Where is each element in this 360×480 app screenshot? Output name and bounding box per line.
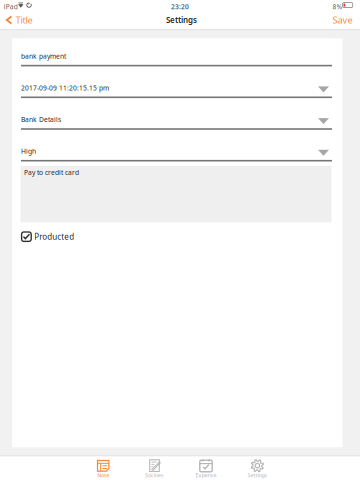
staticText: Title bbox=[15, 14, 32, 26]
staticText: Producted bbox=[34, 231, 74, 242]
staticText: Expense bbox=[195, 472, 216, 479]
button[interactable]: Expense bbox=[180, 457, 232, 480]
staticText: Settings bbox=[247, 472, 267, 479]
staticText: Note bbox=[97, 472, 109, 479]
staticText: iPad bbox=[4, 2, 18, 11]
button[interactable]: High bbox=[21, 134, 332, 165]
staticText: bank payment bbox=[21, 52, 66, 61]
staticText: Settings bbox=[166, 15, 197, 25]
button[interactable]: Stickies bbox=[129, 457, 181, 480]
staticText: 2017-09-09 11:20:15.15 pm bbox=[21, 83, 109, 92]
button[interactable]: Note bbox=[77, 457, 129, 480]
button[interactable]: Bank Details bbox=[21, 102, 332, 134]
button[interactable]: Settings bbox=[231, 457, 283, 480]
staticText: Pay to credit card bbox=[24, 168, 79, 177]
button[interactable]: bank payment bbox=[21, 38, 332, 70]
button[interactable]: Pay to credit card bbox=[20, 166, 331, 222]
button[interactable]: 2017-09-09 11:20:15.15 pm bbox=[21, 70, 332, 102]
button[interactable]: Title bbox=[6, 11, 32, 28]
staticText: Bank Details bbox=[21, 115, 61, 124]
staticText: 8% bbox=[332, 2, 342, 11]
staticText: Save bbox=[332, 14, 352, 26]
staticText: 23:20 bbox=[171, 2, 189, 11]
button[interactable]: Save bbox=[332, 11, 352, 28]
button[interactable]: Producted bbox=[22, 231, 74, 243]
staticText: Stickies bbox=[145, 472, 164, 479]
staticText: High bbox=[21, 147, 36, 156]
